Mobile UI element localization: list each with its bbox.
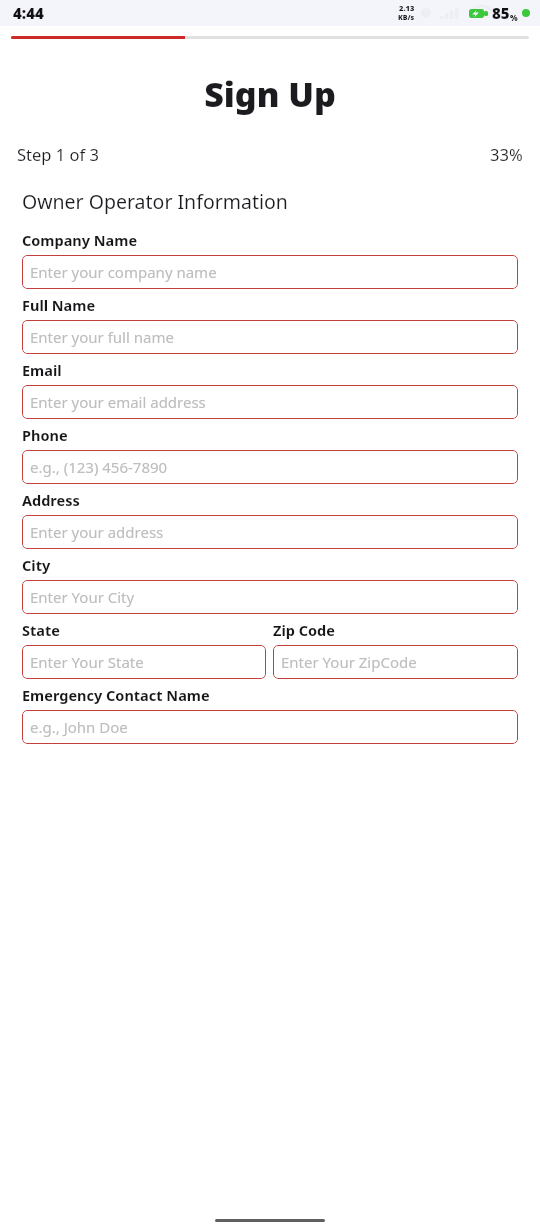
staticText: Enter your full name — [30, 327, 174, 347]
staticText: Emergency Contact Name — [22, 685, 210, 705]
button[interactable]: Enter Your State — [22, 645, 266, 679]
staticText: e.g., John Doe — [30, 717, 128, 737]
staticText: Address — [22, 490, 80, 510]
staticText: Enter Your ZipCode — [281, 652, 417, 672]
staticText: % — [510, 12, 518, 23]
staticText: State — [22, 620, 60, 640]
staticText: Step 1 of 3 — [17, 143, 99, 165]
button[interactable]: Enter your full name — [22, 320, 518, 354]
staticText: 85 — [492, 3, 510, 23]
staticText: Full Name — [22, 295, 96, 315]
button[interactable]: Enter your company name — [22, 255, 518, 289]
staticText: City — [22, 555, 51, 575]
button[interactable]: e.g., (123) 456-7890 — [22, 450, 518, 484]
staticText: Zip Code — [273, 620, 335, 640]
staticText: 33% — [490, 143, 523, 165]
staticText: KB/s — [398, 13, 415, 23]
staticText: Enter Your City — [30, 587, 135, 607]
staticText: Sign Up — [0, 71, 540, 117]
staticText: Enter Your State — [30, 652, 144, 672]
staticText: 2.13 — [399, 3, 415, 13]
button[interactable]: Enter Your ZipCode — [273, 645, 518, 679]
button[interactable]: e.g., John Doe — [22, 710, 518, 744]
staticText: Phone — [22, 425, 68, 445]
staticText: Enter your email address — [30, 392, 206, 412]
button[interactable]: Enter Your City — [22, 580, 518, 614]
staticText: Enter your address — [30, 522, 164, 542]
staticText: 4:44 — [13, 3, 44, 23]
button[interactable]: Enter your address — [22, 515, 518, 549]
staticText: e.g., (123) 456-7890 — [30, 457, 168, 477]
staticText: Email — [22, 360, 62, 380]
staticText: Company Name — [22, 230, 138, 250]
staticText: Owner Operator Information — [22, 188, 288, 215]
staticText: Enter your company name — [30, 262, 217, 282]
button[interactable]: Enter your email address — [22, 385, 518, 419]
